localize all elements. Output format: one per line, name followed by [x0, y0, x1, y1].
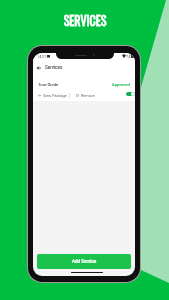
- button[interactable]: View Package: [38, 93, 67, 97]
- staticText: SERVICES: [63, 9, 106, 30]
- staticText: Services: [45, 65, 63, 70]
- staticText: View Package: [43, 93, 67, 97]
- button[interactable]: [33, 74, 135, 101]
- staticText: Tour Guide: [38, 82, 59, 87]
- button[interactable]: Remove: [76, 93, 95, 97]
- staticText: Add Service: [72, 259, 97, 264]
- staticText: Approved: [112, 82, 130, 87]
- staticText: Remove: [81, 93, 95, 97]
- staticText: 74%: [126, 54, 134, 58]
- button[interactable]: Add Service: [37, 254, 131, 269]
- button[interactable]: Toggle service: [126, 92, 135, 96]
- button[interactable]: Back: [35, 64, 43, 72]
- staticText: 14:01: [37, 54, 47, 58]
